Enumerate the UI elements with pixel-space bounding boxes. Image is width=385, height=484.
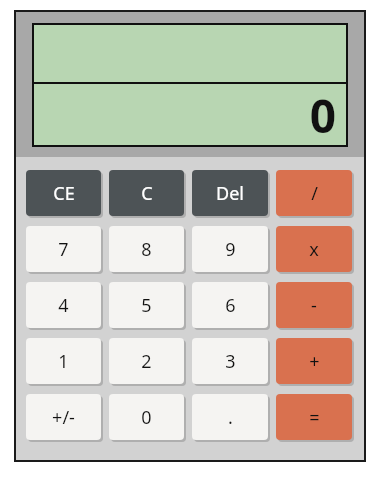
staticText: = [309, 405, 320, 430]
staticText: + [309, 349, 320, 374]
staticText: / [311, 181, 318, 206]
button[interactable]: 8 [109, 226, 184, 272]
button[interactable]: 9 [192, 226, 268, 272]
button[interactable]: / [276, 170, 352, 216]
button[interactable]: 6 [192, 282, 268, 328]
staticText: 5 [141, 293, 152, 318]
staticText: 2 [141, 349, 152, 374]
staticText: - [311, 293, 317, 318]
button[interactable]: - [276, 282, 352, 328]
button[interactable]: 2 [109, 338, 184, 384]
staticText: 1 [58, 349, 69, 374]
staticText: C [141, 181, 153, 206]
button[interactable]: CE [26, 170, 101, 216]
staticText: . [228, 405, 233, 430]
staticText: 4 [58, 293, 69, 318]
staticText: 6 [225, 293, 236, 318]
staticText: 3 [225, 349, 236, 374]
staticText: +/- [52, 405, 75, 430]
button[interactable]: . [192, 394, 268, 440]
button[interactable]: Del [192, 170, 268, 216]
staticText: 0 [309, 84, 336, 145]
button[interactable]: x [276, 226, 352, 272]
button[interactable]: 1 [26, 338, 101, 384]
staticText: 9 [225, 237, 236, 262]
staticText: x [309, 237, 319, 262]
staticText: 8 [141, 237, 152, 262]
button[interactable]: 3 [192, 338, 268, 384]
button[interactable]: 5 [109, 282, 184, 328]
button[interactable]: = [276, 394, 352, 440]
button[interactable]: C [109, 170, 184, 216]
button[interactable]: 7 [26, 226, 101, 272]
button[interactable]: 4 [26, 282, 101, 328]
staticText: CE [53, 181, 75, 206]
button[interactable]: 0 [109, 394, 184, 440]
staticText: Del [216, 181, 244, 206]
staticText: 7 [58, 237, 69, 262]
staticText: 0 [141, 405, 152, 430]
button[interactable]: +/- [26, 394, 101, 440]
button[interactable]: + [276, 338, 352, 384]
